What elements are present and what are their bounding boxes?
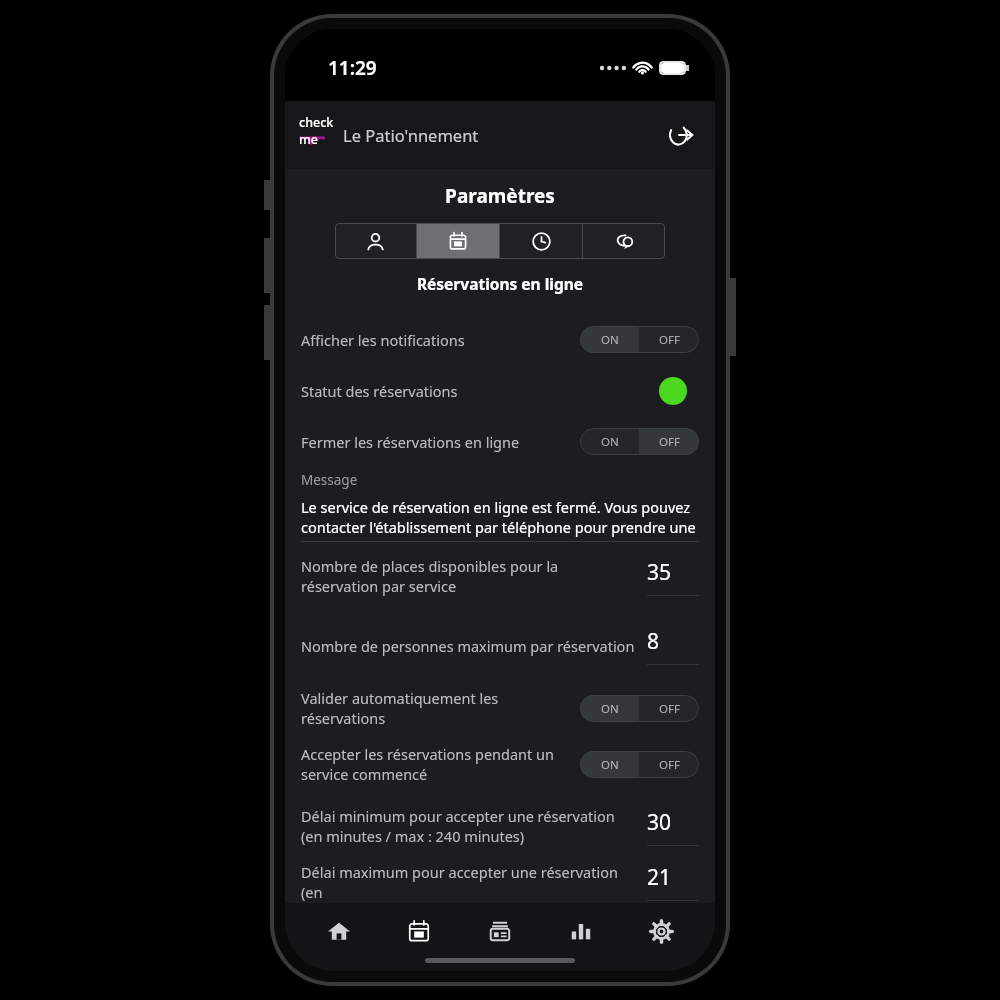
staticText: Valider automatiquement les réservations [301,688,568,728]
staticText: ON [601,701,619,717]
button[interactable]: Accueil [312,911,366,951]
staticText: Statut des réservations [301,381,659,401]
button[interactable]: 8 [647,627,699,665]
staticText: Accepter les réservations pendant un ser… [301,744,568,784]
button[interactable]: Se déconnecter [661,115,701,155]
button[interactable]: OFF [639,751,699,778]
button[interactable]: Statistiques [554,911,608,951]
button[interactable]: ON [580,428,639,455]
staticText: ON [601,332,619,348]
button[interactable]: ON [580,326,639,353]
button[interactable]: Horaires [500,223,582,259]
staticText: ON [601,434,619,450]
button[interactable]: Agenda [392,911,446,951]
staticText: Message [301,471,358,489]
button[interactable]: OFF [639,428,699,455]
staticText: Paramètres [285,183,715,209]
staticText: Nombre de personnes maximum par réservat… [301,636,637,656]
button[interactable]: ON [580,751,639,778]
staticText: 30 [647,808,672,837]
button[interactable]: 30 [647,808,699,846]
staticText: OFF [659,332,680,348]
staticText: 21 [647,863,672,892]
staticText: ON [601,757,619,773]
button[interactable]: Paramètres [634,911,688,951]
button[interactable]: OFF [639,326,699,353]
staticText: me [299,131,319,148]
staticText: OFF [659,757,680,773]
button[interactable]: 35 [647,558,699,596]
button[interactable]: Le service de réservation en ligne est f… [301,497,699,541]
staticText: 11:29 [328,55,377,81]
button[interactable]: OFF [639,695,699,722]
staticText: Afficher les notifications [301,330,568,350]
staticText: Délai minimum pour accepter une réservat… [301,806,637,847]
staticText: Réservations en ligne [285,273,715,294]
staticText: Fermer les réservations en ligne [301,432,568,452]
button[interactable]: ON [580,695,639,722]
button[interactable]: Statut actif [659,377,687,405]
button[interactable]: 21 [647,863,699,901]
staticText: check [299,114,334,131]
staticText: 8 [647,627,660,656]
button[interactable]: Réservations [417,223,499,259]
button[interactable]: Messages [583,223,665,259]
staticText: Délai maximum pour accepter une réservat… [301,862,637,903]
button[interactable]: Caisse [473,911,527,951]
staticText: OFF [659,701,680,717]
staticText: Le service de réservation en ligne est f… [301,497,699,541]
button[interactable]: Clients [335,223,416,259]
staticText: Le Patio'nnement [343,124,479,146]
staticText: Nombre de places disponibles pour la rés… [301,556,637,597]
staticText: OFF [659,434,680,450]
staticText: 35 [647,558,672,587]
